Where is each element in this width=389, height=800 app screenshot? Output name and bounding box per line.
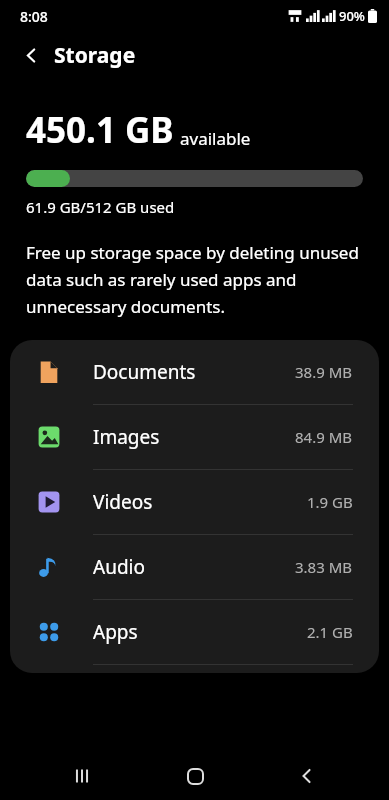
staticText: Audio bbox=[93, 554, 145, 580]
button[interactable]: Home bbox=[165, 754, 225, 798]
staticText: Images bbox=[93, 424, 160, 450]
staticText: Apps bbox=[93, 619, 138, 645]
button[interactable]: Images bbox=[10, 405, 379, 469]
staticText: 8:08 bbox=[20, 7, 48, 26]
staticText: 90% bbox=[339, 7, 365, 25]
button[interactable]: Back bbox=[14, 38, 48, 72]
button[interactable]: Documents bbox=[10, 340, 379, 404]
staticText: available bbox=[180, 127, 251, 150]
staticText: Videos bbox=[93, 489, 153, 515]
button[interactable]: Recents bbox=[52, 754, 112, 798]
button[interactable]: Videos bbox=[10, 470, 379, 534]
staticText: 84.9 MB bbox=[295, 427, 353, 447]
staticText: 61.9 GB/512 GB used bbox=[26, 197, 175, 217]
staticText: Free up storage space by deleting unused… bbox=[26, 241, 367, 318]
staticText: 38.9 MB bbox=[295, 362, 353, 382]
staticText: 1.9 GB bbox=[307, 492, 353, 512]
staticText: Documents bbox=[93, 359, 196, 385]
button[interactable]: Apps bbox=[10, 600, 379, 664]
staticText: 450.1 GB bbox=[26, 106, 174, 154]
button[interactable]: Audio bbox=[10, 535, 379, 599]
staticText: Storage bbox=[54, 41, 136, 70]
staticText: 3.83 MB bbox=[295, 557, 353, 577]
button[interactable]: Back bbox=[277, 754, 337, 798]
staticText: 2.1 GB bbox=[307, 622, 353, 642]
